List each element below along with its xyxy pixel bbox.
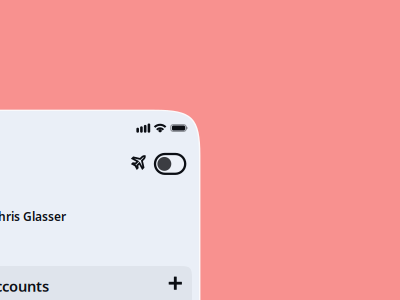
- button[interactable]: Accounts: [0, 266, 192, 300]
- staticText: Accounts: [0, 276, 49, 296]
- button[interactable]: Chris Glasser: [0, 208, 70, 240]
- staticText: Chris Glasser: [0, 208, 66, 224]
- button[interactable]: Add Account: [162, 270, 189, 297]
- button[interactable]: Airplane Mode: [131, 154, 185, 174]
